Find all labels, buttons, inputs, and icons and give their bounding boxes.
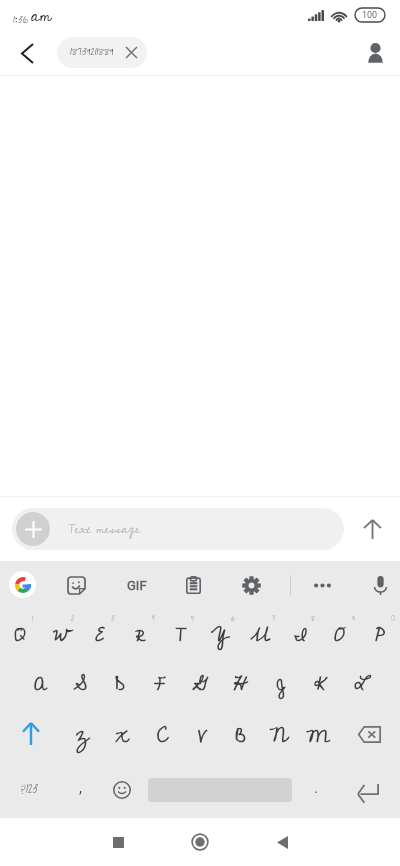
button[interactable]: W [40, 608, 80, 657]
button[interactable]: Send [344, 501, 400, 557]
button[interactable]: Shift [0, 707, 62, 761]
button[interactable]: Z [62, 707, 102, 761]
button[interactable]: . [296, 761, 336, 818]
button[interactable]: V [182, 707, 221, 761]
button[interactable]: Y [200, 608, 240, 657]
staticText: J [276, 668, 285, 702]
staticText: Text message [68, 517, 140, 542]
button[interactable]: J [260, 657, 300, 707]
button[interactable]: Emoji [100, 761, 144, 818]
button[interactable]: L [340, 657, 380, 707]
button[interactable]: E [80, 608, 120, 657]
button[interactable]: 18739211889 [57, 37, 147, 68]
button[interactable]: ? [0, 761, 60, 818]
button[interactable]: K [300, 657, 340, 707]
staticText: 0 [391, 612, 395, 625]
button[interactable]: Voice input [363, 568, 397, 602]
staticText: 100 [362, 10, 378, 21]
staticText: 1:36 [13, 11, 28, 30]
staticText: F [154, 668, 166, 702]
staticText: 9 [352, 612, 355, 625]
staticText: E [95, 619, 105, 653]
staticText: 1 [32, 612, 34, 625]
staticText: 18739211889 [70, 43, 114, 62]
staticText: N [269, 720, 290, 754]
button[interactable]: Home [178, 820, 222, 864]
button[interactable]: Back [10, 36, 44, 70]
staticText: 3 [111, 612, 115, 625]
staticText: Q [14, 619, 26, 653]
button[interactable]: GIF [117, 565, 157, 605]
staticText: 6 [231, 612, 235, 625]
button[interactable]: A [20, 657, 60, 707]
staticText: S [73, 668, 87, 702]
button[interactable]: T [160, 608, 200, 657]
staticText: G [192, 668, 209, 702]
button[interactable]: R [120, 608, 160, 657]
staticText: W [53, 619, 68, 653]
staticText: 7 [272, 612, 275, 625]
button[interactable]: G [180, 657, 220, 707]
staticText: 5 [191, 612, 195, 625]
staticText: H [233, 668, 247, 702]
staticText: 4 [152, 612, 155, 625]
staticText: B [235, 720, 246, 754]
button[interactable]: F [140, 657, 180, 707]
button[interactable]: Enter [336, 761, 400, 818]
button[interactable]: Clipboard [176, 568, 210, 602]
button[interactable]: M [299, 707, 338, 761]
button[interactable]: I [280, 608, 320, 657]
button[interactable]: B [221, 707, 260, 761]
button[interactable]: Add attachment [16, 512, 50, 546]
staticText: U [250, 619, 270, 653]
staticText: I [294, 619, 307, 653]
button[interactable]: Backspace [338, 707, 400, 761]
staticText: 2 [71, 612, 75, 625]
staticText: V [198, 720, 206, 754]
staticText: O [334, 619, 346, 653]
button[interactable]: , [60, 761, 100, 818]
button[interactable]: S [60, 657, 100, 707]
staticText: . [314, 779, 318, 797]
button[interactable]: Recents [96, 820, 140, 864]
staticText: Z [76, 720, 89, 754]
button[interactable]: N [260, 707, 299, 761]
button[interactable]: C [142, 707, 182, 761]
button[interactable]: Stickers [59, 568, 93, 602]
button[interactable]: More options [305, 568, 339, 602]
button[interactable]: Settings [234, 568, 268, 602]
button[interactable]: P [360, 608, 400, 657]
staticText: C [157, 720, 168, 754]
staticText: P [375, 619, 385, 653]
button[interactable]: D [100, 657, 140, 707]
staticText: D [115, 668, 125, 702]
button[interactable]: Google [9, 571, 36, 598]
staticText: A [34, 668, 47, 702]
staticText: GIF [127, 578, 147, 593]
staticText: L [354, 668, 367, 702]
staticText: Y [211, 619, 229, 653]
button[interactable]: X [102, 707, 142, 761]
staticText: M [306, 720, 331, 754]
staticText: am [31, 0, 52, 30]
staticText: R [135, 619, 146, 653]
staticText: T [175, 619, 185, 653]
button[interactable]: H [220, 657, 260, 707]
staticText: 8 [311, 612, 316, 625]
staticText: X [115, 720, 129, 754]
button[interactable]: Contact details [357, 35, 393, 71]
button[interactable]: Back [260, 820, 304, 864]
button[interactable]: Q [0, 608, 40, 657]
staticText: ? [21, 783, 26, 800]
button[interactable]: U [240, 608, 280, 657]
staticText: 123 [26, 779, 39, 800]
button[interactable]: Add attachment [12, 508, 344, 550]
staticText: , [79, 779, 82, 797]
staticText: K [314, 668, 326, 702]
button[interactable]: O [320, 608, 360, 657]
